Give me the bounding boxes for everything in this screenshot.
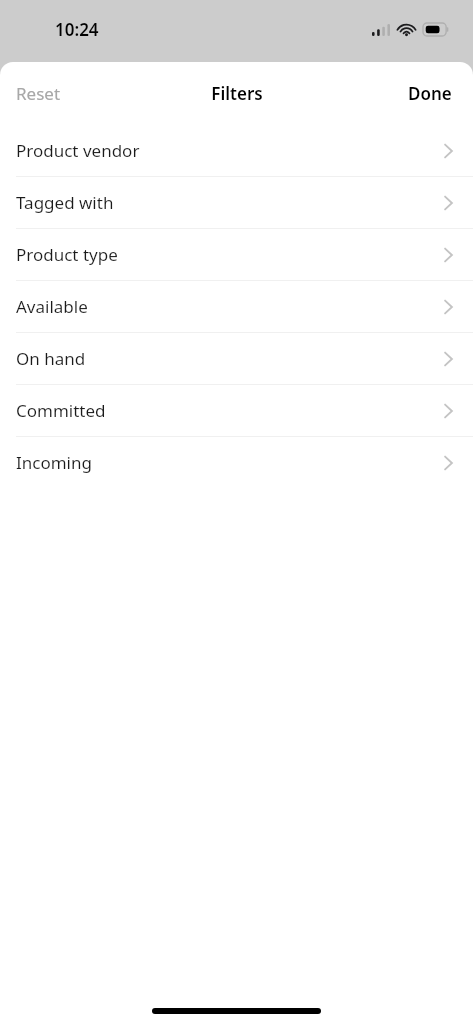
staticText: On hand — [16, 347, 444, 370]
staticText: 10:24 — [55, 18, 99, 41]
staticText: Done — [408, 82, 452, 105]
other: Open Tagged with — [444, 195, 453, 211]
other: Open Committed — [444, 403, 453, 419]
button[interactable]: Committed — [0, 385, 473, 436]
button[interactable]: On hand — [0, 333, 473, 384]
staticText: Tagged with — [16, 191, 444, 214]
staticText: Available — [16, 295, 444, 318]
button[interactable]: Available — [0, 281, 473, 332]
button[interactable]: Incoming — [0, 437, 473, 488]
other: Open Incoming — [444, 455, 453, 471]
staticText: Incoming — [16, 451, 444, 474]
staticText: Committed — [16, 399, 444, 422]
other: Open Product type — [444, 247, 453, 263]
staticText: Product vendor — [16, 139, 444, 162]
button[interactable]: Product vendor — [0, 125, 473, 176]
button[interactable]: Reset — [0, 74, 77, 113]
staticText: Product type — [16, 243, 444, 266]
other: Open Available — [444, 299, 453, 315]
staticText: Filters — [211, 82, 263, 105]
staticText: Reset — [16, 82, 61, 105]
other: Open On hand — [444, 351, 453, 367]
other: Open Product vendor — [444, 143, 453, 159]
button[interactable]: Product type — [0, 229, 473, 280]
button[interactable]: Tagged with — [0, 177, 473, 228]
button[interactable]: Done — [387, 74, 473, 113]
